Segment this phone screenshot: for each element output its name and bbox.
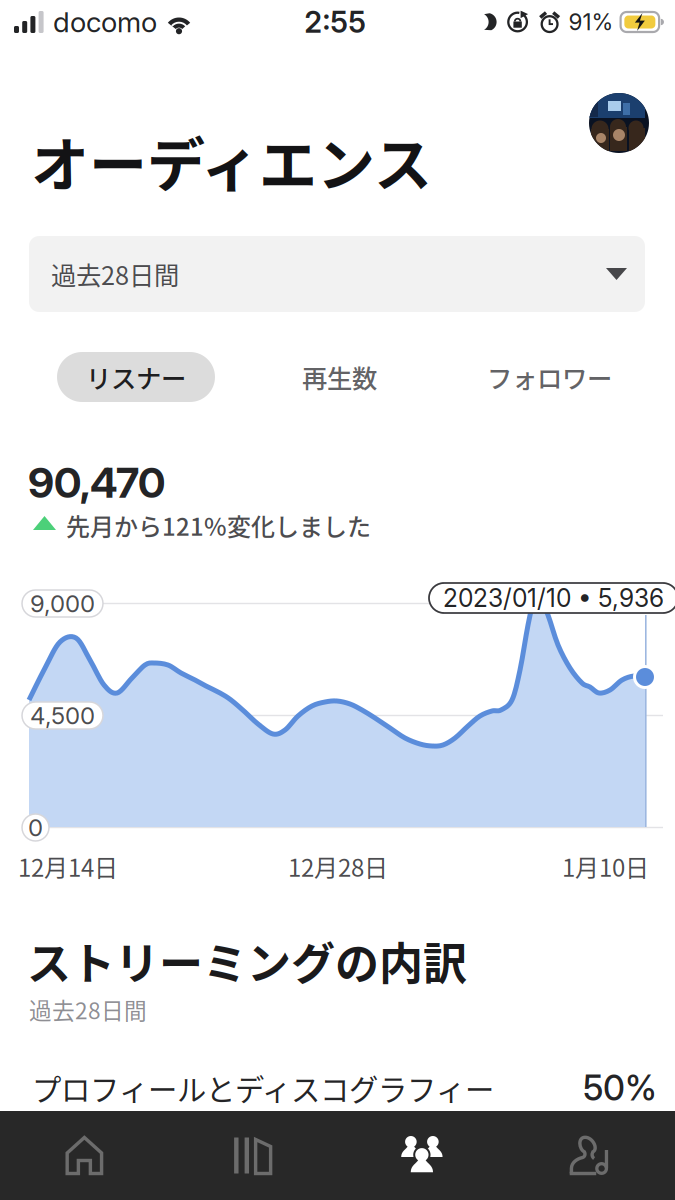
staticText: 90,470 [28,457,165,508]
staticText: リスナー [86,359,186,395]
button[interactable]: フォロワー [461,352,638,402]
staticText: 2:55 [304,4,366,40]
staticText: 4,500 [30,701,95,730]
staticText: 9,000 [30,589,95,618]
staticText: 50% [583,1067,657,1109]
button[interactable]: 過去28日間 [29,236,645,312]
staticText: 12月14日 [18,849,118,884]
staticText: 0 [28,813,43,842]
button[interactable]: Profile [506,1111,675,1200]
button[interactable]: リスナー [57,352,215,402]
staticText: フォロワー [487,359,612,395]
staticText: 91% [569,8,614,36]
staticText: 1月10日 [562,849,649,884]
staticText: 再生数 [302,359,377,395]
staticText: プロフィールとディスコグラフィー [32,1067,494,1109]
button[interactable]: Home [0,1111,169,1200]
button[interactable]: Audience [337,1111,506,1200]
staticText: 過去28日間 [51,256,179,292]
staticText: 過去28日間 [29,993,147,1026]
staticText: オーディエンス [31,119,432,203]
button[interactable]: Music [169,1111,338,1200]
staticText: 2023/01/10 • 5,936 [443,583,664,613]
button[interactable]: 再生数 [276,352,403,402]
button[interactable]: Account [589,93,649,153]
staticText: 12月28日 [288,849,388,884]
staticText: docomo [53,5,157,39]
staticText: 先月から121%変化しました [66,508,371,543]
button[interactable]: プロフィールとディスコグラフィー [0,1059,675,1117]
staticText: ストリーミングの内訳 [27,929,467,993]
